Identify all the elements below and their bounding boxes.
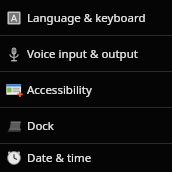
staticText: Dock — [27, 118, 55, 134]
staticText: Accessibility — [27, 82, 92, 98]
button[interactable]: Language & keyboard — [0, 0, 172, 35]
staticText: Language & keyboard — [27, 10, 146, 26]
button[interactable]: Accessibility — [0, 72, 172, 107]
staticText: Voice input & output — [27, 46, 138, 62]
button[interactable]: Dock — [0, 108, 172, 143]
staticText: Date & time — [27, 150, 92, 166]
button[interactable]: Date & time — [0, 144, 172, 172]
button[interactable]: Voice input & output — [0, 36, 172, 71]
